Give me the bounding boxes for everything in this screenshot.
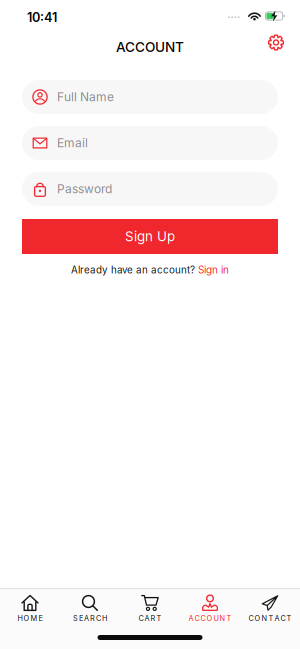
staticText: Sign in: [198, 264, 229, 276]
staticText: 10:41: [27, 10, 57, 25]
button[interactable]: Full Name: [22, 80, 278, 114]
button[interactable]: S E A R C H: [60, 594, 120, 623]
staticText: S E A R C H: [73, 614, 107, 623]
button[interactable]: Sign in: [198, 264, 229, 276]
button[interactable]: A C C O U N T: [180, 594, 240, 623]
staticText: Already have an account?: [71, 264, 198, 276]
button[interactable]: Password: [22, 172, 278, 206]
staticText: A C C O U N T: [188, 614, 231, 623]
staticText: C A R T: [138, 614, 161, 623]
button[interactable]: Sign Up: [22, 219, 278, 254]
button[interactable]: H O M E: [0, 594, 60, 623]
button[interactable]: Settings: [266, 32, 286, 52]
staticText: H O M E: [17, 614, 42, 623]
button[interactable]: C O N T A C T: [240, 594, 300, 623]
button[interactable]: Email: [22, 126, 278, 160]
staticText: Full Name: [57, 90, 114, 104]
staticText: Sign Up: [125, 228, 175, 244]
staticText: ACCOUNT: [116, 39, 184, 55]
staticText: C O N T A C T: [248, 614, 291, 623]
staticText: Password: [57, 182, 112, 196]
staticText: Email: [57, 136, 88, 150]
button[interactable]: C A R T: [120, 594, 180, 623]
